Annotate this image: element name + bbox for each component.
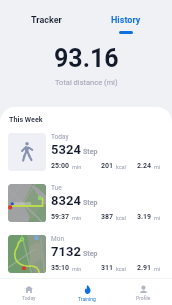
- button[interactable]: History: [86, 8, 166, 36]
- staticText: 7132: [51, 244, 81, 259]
- button[interactable]: Tue: [0, 184, 172, 228]
- staticText: 35:10: [51, 264, 70, 272]
- staticText: 201: [101, 162, 114, 170]
- button[interactable]: Training: [58, 278, 115, 305]
- staticText: min: [72, 215, 82, 221]
- button[interactable]: Today: [0, 278, 58, 305]
- staticText: mi: [154, 215, 161, 221]
- staticText: min: [72, 164, 82, 170]
- staticText: 2.24: [137, 162, 152, 170]
- staticText: Total distance (mi): [55, 78, 118, 87]
- button[interactable]: Profile: [115, 278, 172, 305]
- staticText: Today: [22, 295, 36, 301]
- staticText: 311: [101, 264, 114, 272]
- staticText: min: [72, 266, 82, 272]
- staticText: kcal: [116, 164, 126, 170]
- button[interactable]: Tracker: [6, 8, 86, 36]
- button[interactable]: Today: [0, 133, 172, 177]
- staticText: Step: [83, 148, 98, 156]
- staticText: Step: [83, 250, 98, 258]
- staticText: mi: [154, 164, 161, 170]
- staticText: Profile: [136, 295, 151, 301]
- staticText: 5324: [51, 142, 81, 157]
- staticText: 3.19: [137, 213, 152, 221]
- staticText: Mon: [51, 235, 64, 243]
- staticText: mi: [154, 266, 161, 272]
- staticText: 387: [101, 213, 114, 221]
- staticText: Tracker: [31, 15, 62, 26]
- staticText: Step: [83, 199, 98, 207]
- button[interactable]: Mon: [0, 235, 172, 279]
- staticText: This Week: [9, 115, 43, 123]
- staticText: 93.16: [54, 44, 119, 73]
- staticText: 8324: [51, 193, 81, 208]
- staticText: Training: [78, 296, 96, 302]
- staticText: 2.91: [137, 264, 152, 272]
- staticText: 25:00: [51, 162, 70, 170]
- staticText: Today: [51, 133, 69, 141]
- staticText: Tue: [51, 184, 62, 192]
- staticText: kcal: [116, 266, 126, 272]
- staticText: 59:37: [51, 213, 70, 221]
- staticText: History: [111, 15, 141, 26]
- staticText: kcal: [116, 215, 126, 221]
